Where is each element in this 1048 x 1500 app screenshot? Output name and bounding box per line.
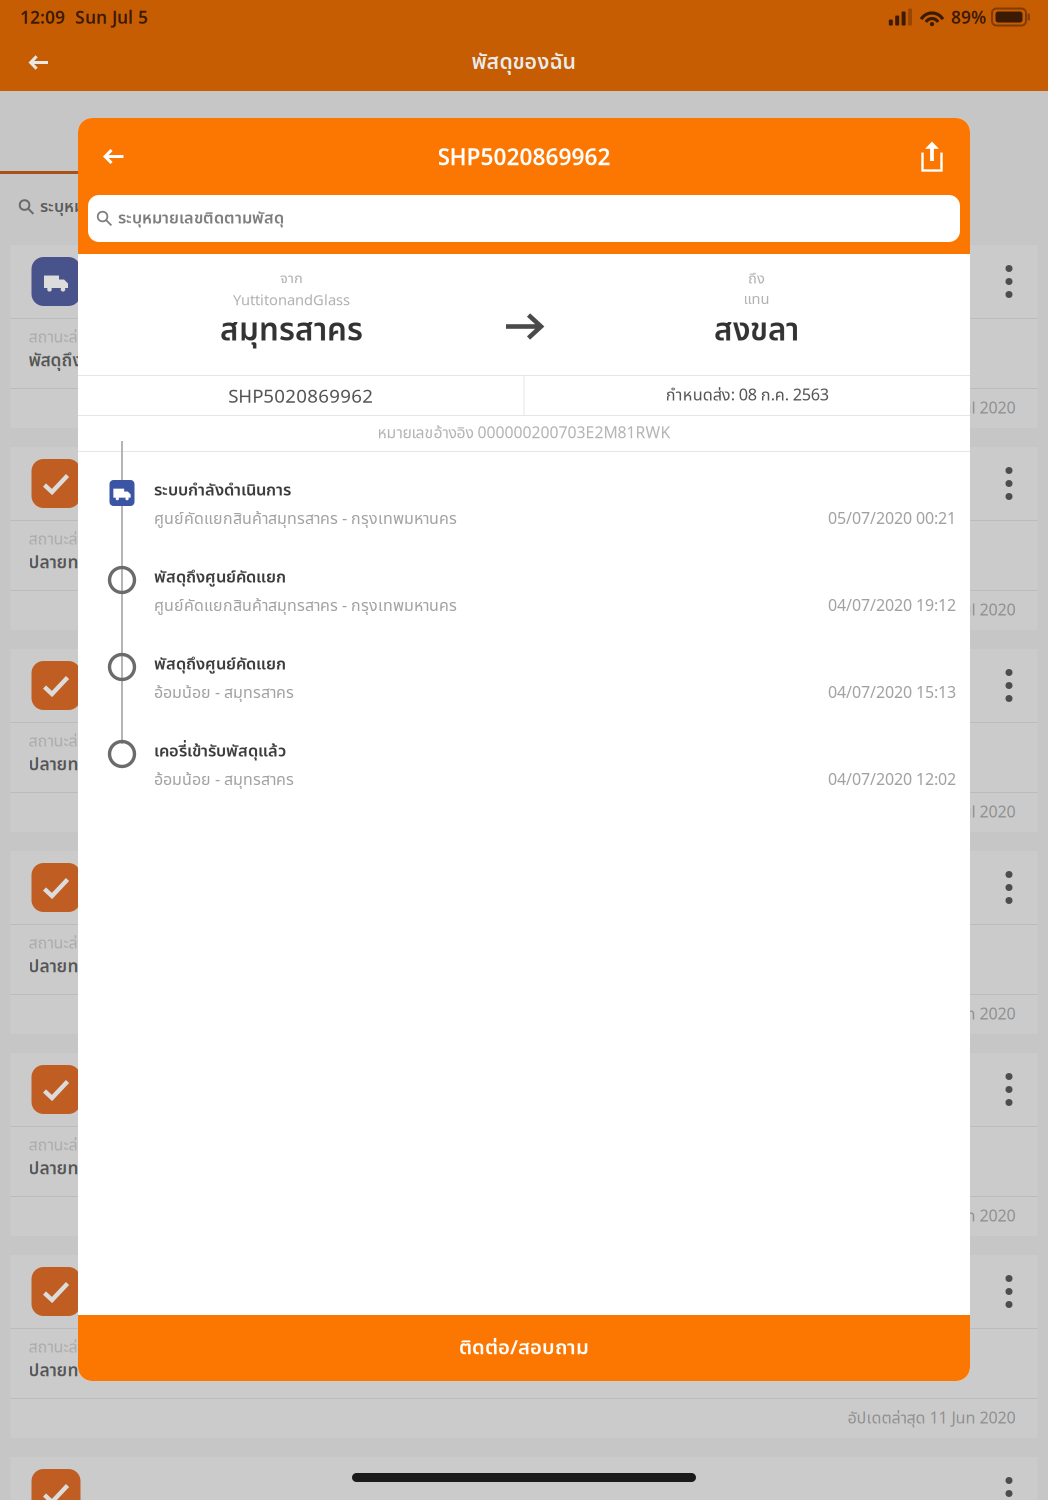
staticText: อัปเดตล่าสุด 05 Jul 2020: [853, 396, 1015, 421]
button[interactable]: Back: [88, 130, 140, 182]
staticText: ระบบกำลังดำเนินการ: [154, 478, 291, 503]
staticText: ศูนย์คัดแยกสินค้าสมุทรสาคร - กรุงเทพมหาน…: [154, 507, 457, 531]
staticText: สถานะพัสดุ: [478, 116, 569, 146]
staticText: อัปเดตล่าสุด 11 Jun 2020: [847, 1406, 1015, 1431]
staticText: พัสดุถึงศูนย์คัดแยก: [28, 348, 169, 374]
staticText: ศูนย์คัดแยกสินค้าสมุทรสาคร - กรุงเทพมหาน…: [154, 594, 457, 618]
staticText: สถานะล่าสุด: [28, 325, 102, 350]
staticText: อัปเดตล่าสุด 25 Jun 2020: [847, 1002, 1015, 1027]
staticText: อัปเดตล่าสุด 18 Jun 2020: [847, 1204, 1015, 1229]
staticText: สถานะล่าสุด: [28, 931, 102, 956]
staticText: 04/07/2020 19:12: [828, 594, 956, 618]
staticText: 04/07/2020 15:13: [828, 681, 956, 705]
staticText: สงขลา: [714, 307, 799, 355]
staticText: SHP5020869962: [228, 383, 373, 408]
staticText: สถานะล่าสุด: [28, 1133, 102, 1158]
staticText: Sun Jul 5: [65, 5, 148, 28]
staticText: 89%: [951, 5, 986, 28]
staticText: ปลายทางได้รับเรียบร้อยแล้ว: [28, 752, 229, 778]
staticText: จาก: [280, 268, 303, 290]
staticText: สมุทรสาคร: [220, 307, 363, 355]
staticText: พัสดุถึงศูนย์คัดแยก: [154, 565, 286, 590]
staticText: แทน: [743, 288, 769, 311]
staticText: อัปเดตล่าสุด 03 Jul 2020: [853, 800, 1015, 825]
staticText: YuttitonandGlass: [233, 290, 350, 309]
button[interactable]: ติดต่อ/สอบถาม: [78, 1315, 970, 1381]
staticText: ปลายทางได้รับเรียบร้อยแล้ว: [28, 1358, 229, 1384]
staticText: สถานะล่าสุด: [28, 1335, 102, 1360]
staticText: สถานะล่าสุด: [28, 729, 102, 754]
staticText: อัปเดตล่าสุด 04 Jul 2020: [853, 598, 1015, 623]
staticText: พัสดุของฉัน: [471, 46, 576, 79]
staticText: ระบุหมายเลขติดตามพัสดุ: [40, 195, 206, 219]
staticText: ติดต่อ/สอบถาม: [459, 1333, 589, 1363]
staticText: พัสดุถึงศูนย์คัดแยก: [154, 652, 286, 677]
staticText: เคอรี่เข้ารับพัสดุแล้ว: [154, 739, 286, 764]
staticText: 12:09: [20, 5, 65, 28]
staticText: อ้อมน้อย - สมุทรสาคร: [154, 768, 294, 792]
button[interactable]: Share: [909, 130, 955, 182]
staticText: SHP5020869962: [437, 141, 610, 171]
staticText: 04/07/2020 12:02: [828, 768, 956, 792]
staticText: ปลายทางได้รับเรียบร้อยแล้ว: [28, 550, 229, 576]
staticText: ปลายทางได้รับเรียบร้อยแล้ว: [28, 954, 229, 980]
staticText: สถานะล่าสุด: [28, 527, 102, 552]
staticText: 05/07/2020 00:21: [828, 507, 956, 531]
staticText: ปลายทางได้รับเรียบร้อยแล้ว: [28, 1156, 229, 1182]
staticText: อ้อมน้อย - สมุทรสาคร: [154, 681, 294, 705]
staticText: หมายเลขอ้างอิง 000000200703E2M81RWK: [377, 422, 670, 445]
button[interactable]: ระบุหมายเลขติดตามพัสดุ: [88, 195, 960, 242]
staticText: ถึง: [748, 268, 765, 290]
staticText: ระบุหมายเลขติดตามพัสดุ: [118, 206, 284, 231]
staticText: กำหนดส่ง: 08 ก.ค. 2563: [666, 383, 829, 408]
